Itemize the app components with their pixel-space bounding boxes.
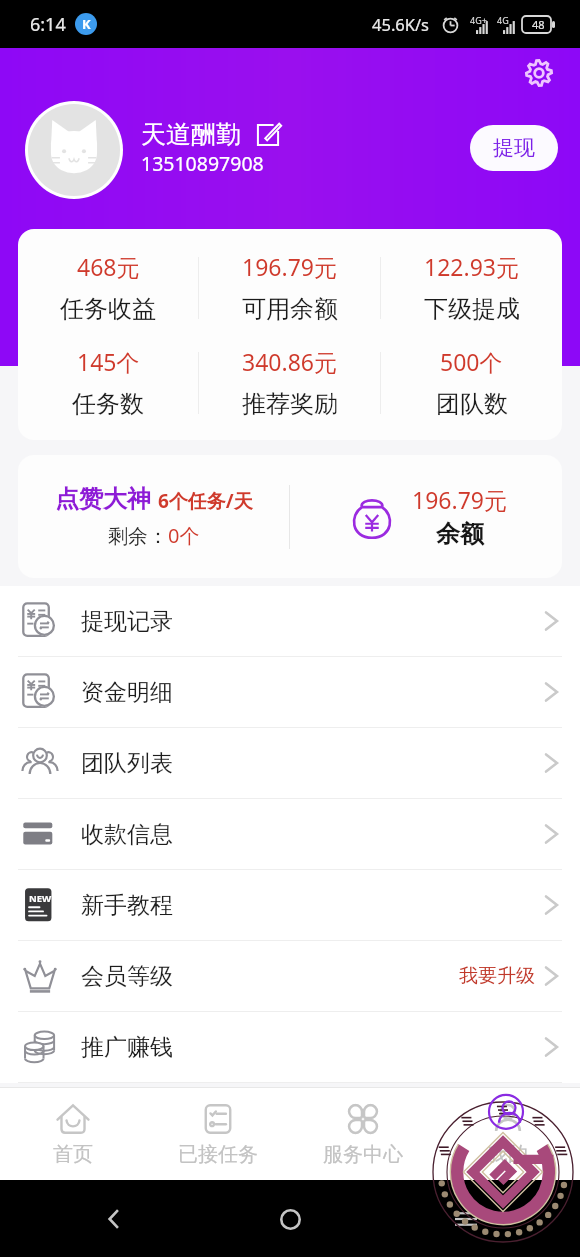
staticText: 会员等级 bbox=[81, 962, 173, 991]
staticText: 下级提成 bbox=[424, 294, 520, 324]
staticText: 可用余额 bbox=[242, 294, 338, 324]
staticText: 收款信息 bbox=[81, 820, 173, 849]
button[interactable]: 提现 bbox=[470, 125, 558, 171]
staticText: K bbox=[82, 15, 91, 33]
button[interactable]: 已接任务 bbox=[145, 1088, 290, 1180]
staticText: 点赞大神 bbox=[55, 484, 151, 514]
staticText: 天道酬勤 bbox=[141, 119, 241, 150]
staticText: 468元 bbox=[77, 251, 140, 282]
button[interactable]: Edit nickname bbox=[254, 121, 282, 149]
staticText: 500个 bbox=[440, 346, 503, 377]
button[interactable]: 收款信息 bbox=[0, 799, 580, 870]
button[interactable]: NEW bbox=[0, 870, 580, 941]
button[interactable]: Recent apps bbox=[442, 1195, 490, 1243]
staticText: 340.86元 bbox=[242, 346, 337, 377]
staticText: 团队列表 bbox=[81, 749, 173, 778]
staticText: 45.6K/s bbox=[372, 13, 429, 35]
button[interactable]: 提现记录 bbox=[0, 586, 580, 657]
button[interactable]: 服务中心 bbox=[290, 1088, 435, 1180]
staticText: 推荐奖励 bbox=[242, 389, 338, 419]
staticText: 122.93元 bbox=[424, 251, 519, 282]
staticText: 4G bbox=[497, 14, 509, 26]
staticText: 13510897908 bbox=[141, 150, 264, 177]
staticText: 任务数 bbox=[72, 389, 144, 419]
staticText: 196.79元 bbox=[412, 484, 507, 515]
button[interactable]: Settings bbox=[520, 54, 558, 92]
button[interactable]: 首页 bbox=[0, 1088, 145, 1180]
staticText: 新手教程 bbox=[81, 891, 173, 920]
staticText: 剩余： bbox=[108, 524, 168, 549]
staticText: 提现 bbox=[493, 135, 535, 161]
staticText: 6个任务/天 bbox=[158, 488, 253, 514]
staticText: 任务收益 bbox=[60, 294, 156, 324]
staticText: NEW bbox=[29, 892, 52, 905]
staticText: 48 bbox=[532, 17, 545, 32]
staticText: 4G+ bbox=[470, 14, 487, 26]
button[interactable]: 我的 bbox=[435, 1088, 580, 1180]
staticText: 已接任务 bbox=[178, 1142, 258, 1167]
button[interactable]: Home bbox=[266, 1195, 314, 1243]
button[interactable]: 推广赚钱 bbox=[0, 1012, 580, 1083]
staticText: 196.79元 bbox=[242, 251, 337, 282]
button[interactable]: 会员等级 bbox=[0, 941, 580, 1012]
button[interactable]: Back bbox=[90, 1195, 138, 1243]
staticText: 0个 bbox=[168, 522, 200, 549]
staticText: 推广赚钱 bbox=[81, 1033, 173, 1062]
staticText: 6:14 bbox=[30, 12, 66, 37]
staticText: 余额 bbox=[436, 519, 484, 549]
staticText: 团队数 bbox=[436, 389, 508, 419]
button[interactable]: 资金明细 bbox=[0, 657, 580, 728]
staticText: 提现记录 bbox=[81, 607, 173, 636]
staticText: 我的 bbox=[488, 1142, 528, 1167]
staticText: 资金明细 bbox=[81, 678, 173, 707]
button[interactable]: 团队列表 bbox=[0, 728, 580, 799]
staticText: 我要升级 bbox=[459, 964, 535, 988]
staticText: 145个 bbox=[77, 346, 140, 377]
staticText: 首页 bbox=[53, 1142, 93, 1167]
staticText: 服务中心 bbox=[323, 1142, 403, 1167]
